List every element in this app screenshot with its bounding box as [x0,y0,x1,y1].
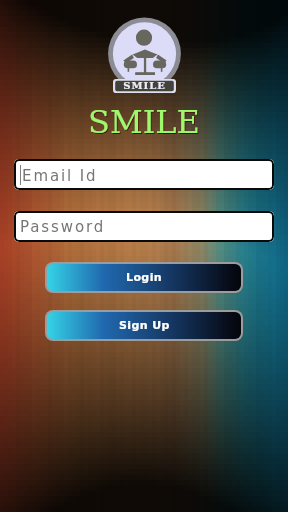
staticText: SMILE [0,103,288,140]
staticText: Sign Up [119,319,170,332]
button[interactable]: Sign Up [47,312,241,339]
other: SMILE logo [107,17,181,93]
button[interactable]: Login [47,264,241,291]
button[interactable]: Password [14,211,274,242]
staticText: SMILE [123,80,166,92]
button[interactable]: Email Id [14,159,274,190]
staticText: Login [126,271,163,284]
staticText: Email Id [22,167,98,184]
staticText: SMILE [1,104,288,141]
staticText: Password [20,218,106,235]
